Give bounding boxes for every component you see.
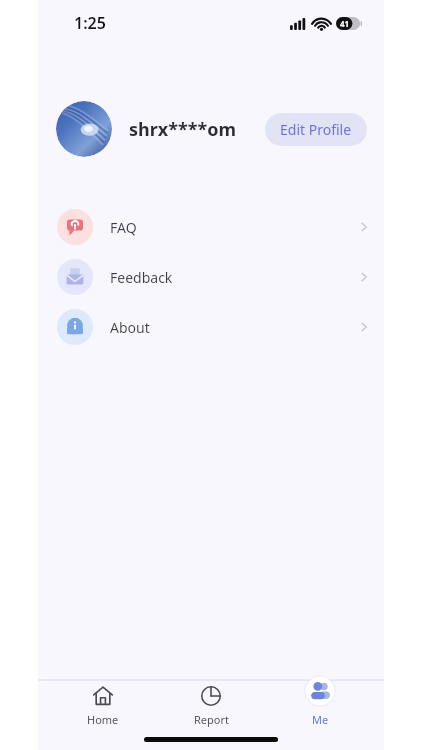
staticText: About bbox=[110, 318, 150, 337]
staticText: Me bbox=[312, 712, 329, 727]
staticText: FAQ bbox=[110, 218, 137, 237]
button[interactable]: Edit Profile bbox=[265, 113, 367, 146]
button[interactable]: About bbox=[38, 309, 384, 345]
button[interactable]: FAQ bbox=[38, 209, 384, 245]
button[interactable]: Me bbox=[276, 681, 364, 727]
button[interactable]: Feedback bbox=[38, 259, 384, 295]
staticText: Edit Profile bbox=[280, 120, 352, 139]
button[interactable]: Home bbox=[59, 681, 147, 727]
staticText: Report bbox=[194, 712, 229, 727]
staticText: shrx****om bbox=[129, 117, 237, 142]
staticText: Feedback bbox=[110, 268, 173, 287]
staticText: 41 bbox=[340, 18, 350, 29]
staticText: Home bbox=[87, 712, 119, 727]
staticText: 1:25 bbox=[74, 12, 106, 34]
button[interactable]: Report bbox=[167, 681, 255, 727]
